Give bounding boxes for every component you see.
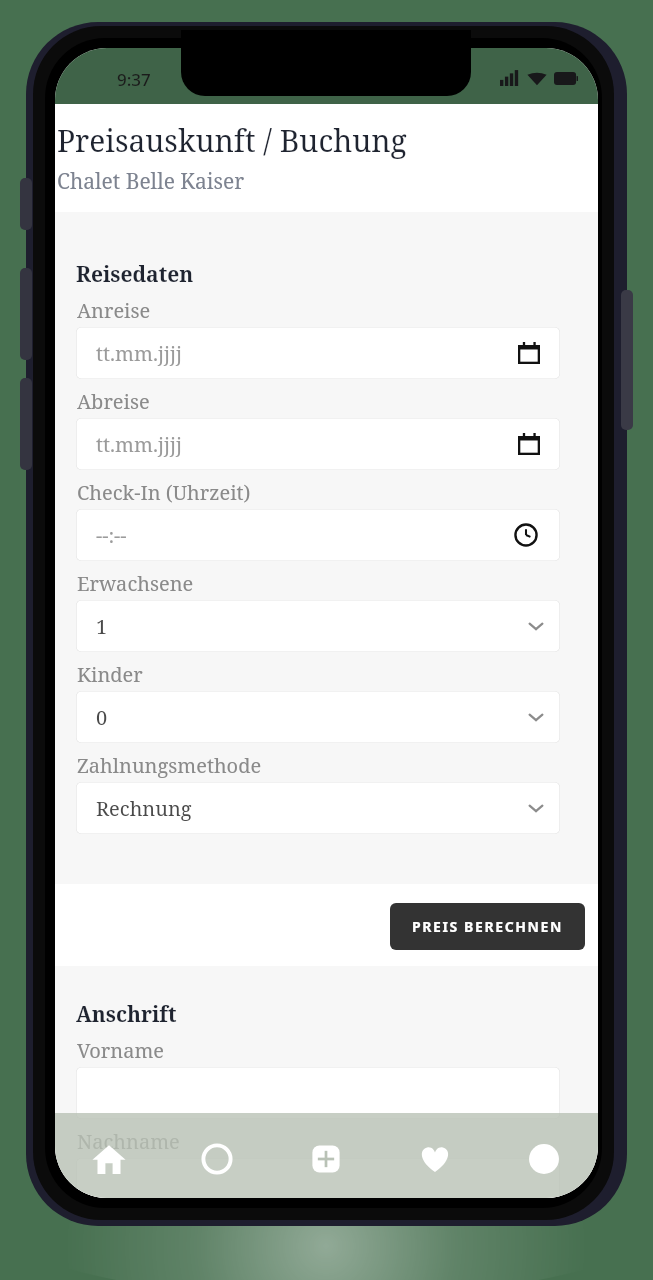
- button[interactable]: [76, 1158, 560, 1198]
- staticText: Anschrift: [76, 1000, 177, 1029]
- button[interactable]: Home: [55, 1135, 163, 1183]
- staticText: Zahlnungsmethode: [77, 752, 262, 779]
- button[interactable]: [76, 1067, 560, 1119]
- staticText: PREIS BERECHNEN: [412, 917, 563, 936]
- staticText: Preisauskunft / Buchung: [57, 120, 407, 161]
- button[interactable]: tt.mm.jjjj: [76, 327, 560, 379]
- other: Open list: [526, 798, 546, 818]
- staticText: tt.mm.jjjj: [96, 340, 182, 367]
- staticText: 9:37: [117, 68, 151, 91]
- other: Pick time: [514, 523, 538, 547]
- staticText: Kinder: [77, 661, 143, 688]
- staticText: Nachname: [77, 1128, 180, 1155]
- staticText: --:--: [96, 522, 127, 549]
- staticText: Rechnung: [96, 795, 192, 822]
- staticText: Chalet Belle Kaiser: [57, 167, 245, 196]
- staticText: Check-In (Uhrzeit): [77, 479, 251, 506]
- button[interactable]: Explore: [163, 1135, 271, 1183]
- button[interactable]: 0: [76, 691, 560, 743]
- staticText: Vorname: [77, 1037, 165, 1064]
- other: Open list: [526, 707, 546, 727]
- staticText: Erwachsene: [77, 570, 194, 597]
- other: Open list: [526, 616, 546, 636]
- other: Pick date: [518, 433, 540, 455]
- button[interactable]: Favorites: [380, 1135, 489, 1183]
- button[interactable]: Rechnung: [76, 782, 560, 834]
- button[interactable]: Add: [271, 1135, 380, 1183]
- button[interactable]: 1: [76, 600, 560, 652]
- staticText: Abreise: [77, 388, 150, 415]
- button[interactable]: Profile: [489, 1135, 598, 1183]
- button[interactable]: tt.mm.jjjj: [76, 418, 560, 470]
- staticText: 0: [96, 704, 108, 731]
- button[interactable]: --:--: [76, 509, 560, 561]
- staticText: Anreise: [77, 297, 151, 324]
- other: Pick date: [518, 342, 540, 364]
- staticText: 1: [96, 613, 108, 640]
- staticText: Reisedaten: [76, 260, 194, 289]
- button[interactable]: PREIS BERECHNEN: [390, 903, 585, 950]
- staticText: tt.mm.jjjj: [96, 431, 182, 458]
